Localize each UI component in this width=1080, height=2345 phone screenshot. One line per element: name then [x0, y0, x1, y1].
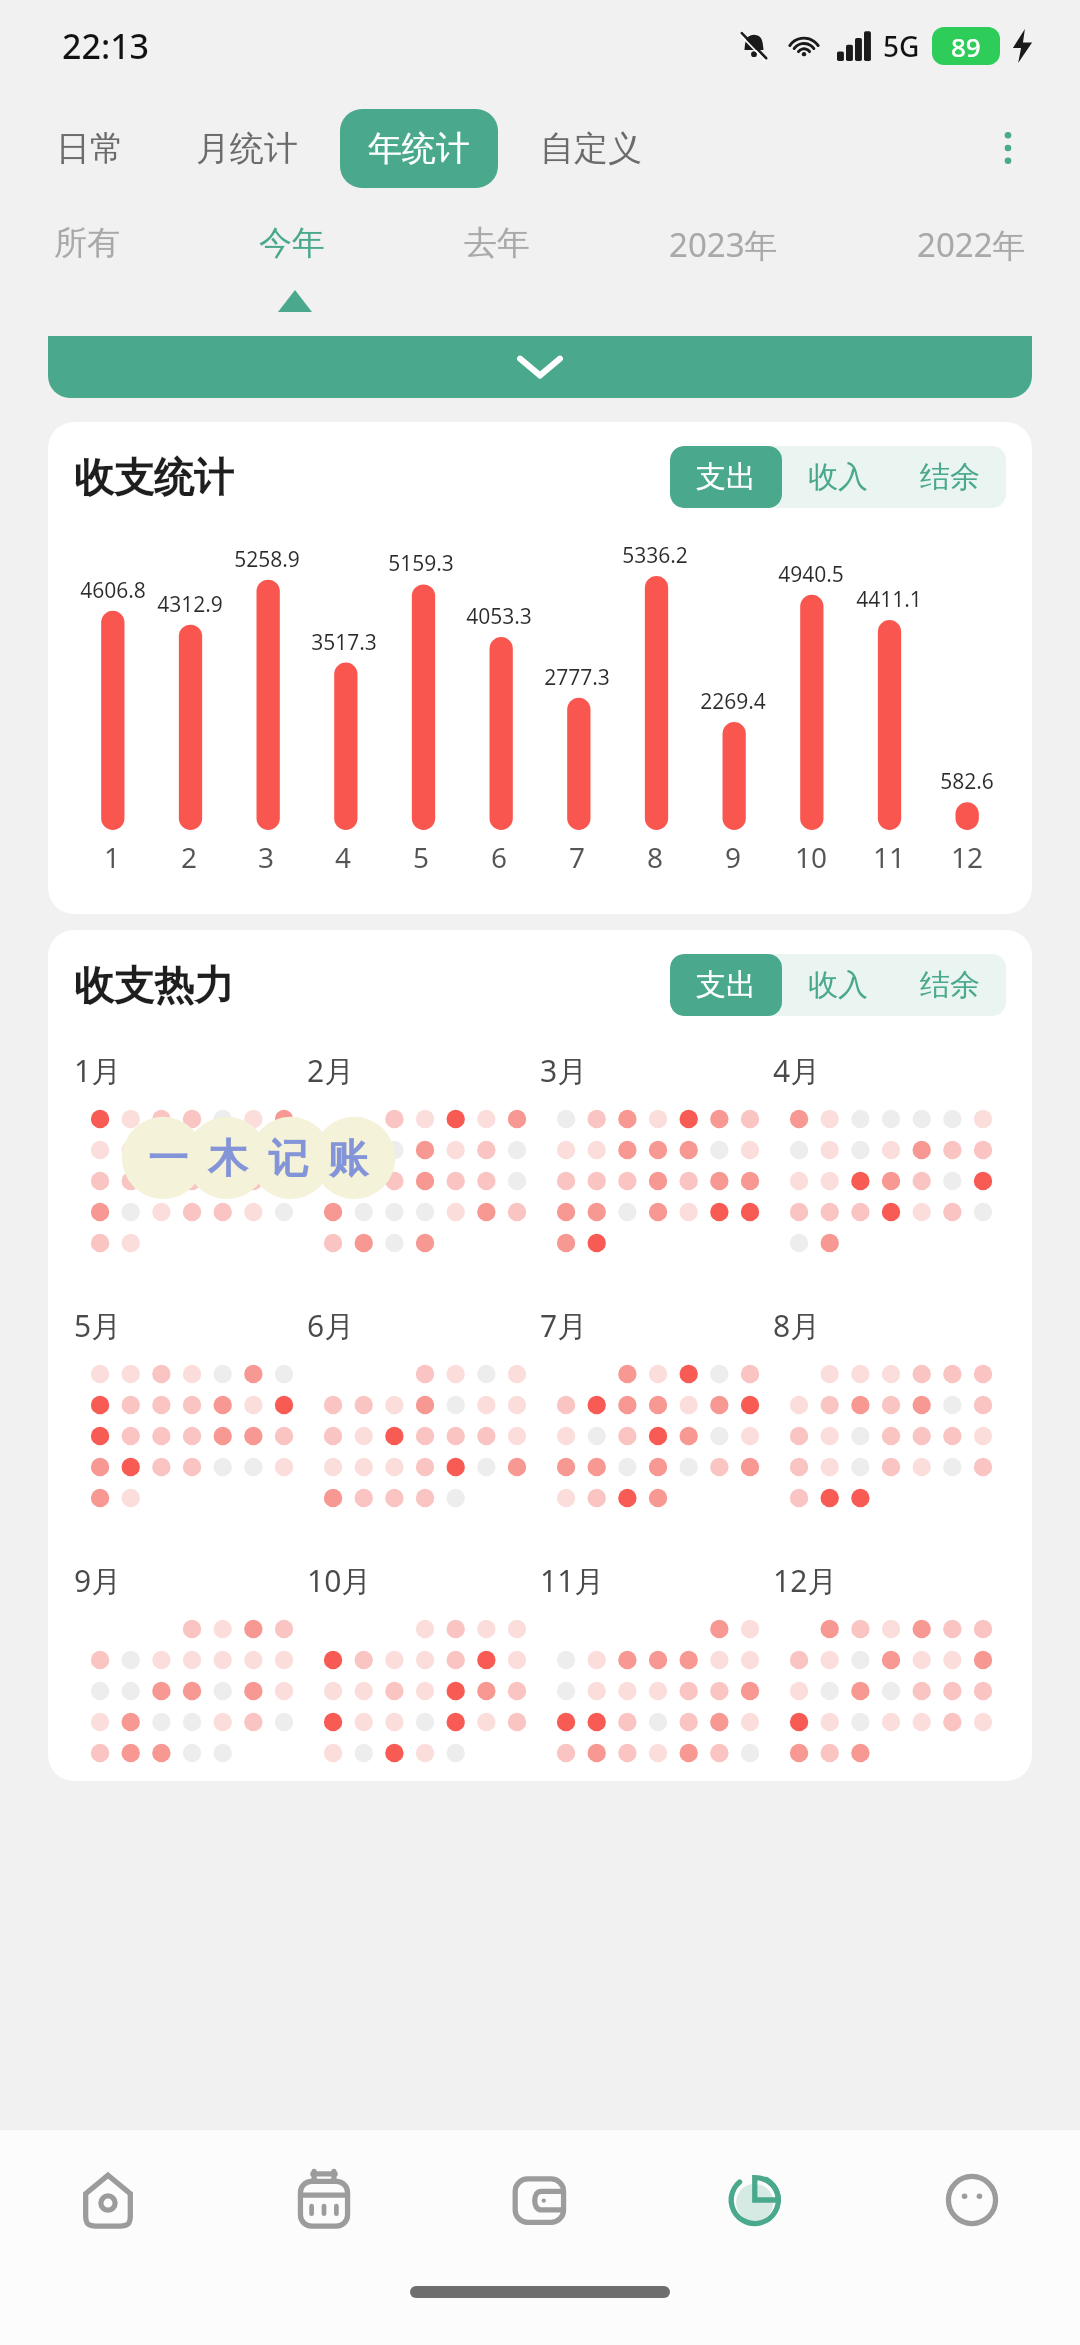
- staticText: 5月: [74, 1305, 122, 1346]
- button[interactable]: Expand summary: [48, 336, 1032, 398]
- staticText: 3月: [540, 1050, 588, 1091]
- button[interactable]: 收入: [782, 954, 894, 1016]
- staticText: 记: [268, 1133, 308, 1183]
- staticText: 5G: [883, 27, 920, 65]
- staticText: 12月: [773, 1560, 838, 1601]
- staticText: 22:13: [62, 23, 150, 69]
- staticText: 11: [873, 838, 906, 876]
- button[interactable]: 结余: [894, 446, 1006, 508]
- staticText: 收支热力: [74, 960, 234, 1010]
- button[interactable]: 年统计: [340, 109, 498, 188]
- staticText: 4411.1: [856, 585, 922, 614]
- staticText: 9: [725, 838, 742, 876]
- staticText: 3517.3: [311, 628, 377, 657]
- button[interactable]: Wallet: [432, 2130, 648, 2270]
- staticText: 4月: [773, 1050, 821, 1091]
- staticText: 4312.9: [157, 590, 223, 619]
- staticText: 结余: [920, 966, 980, 1004]
- staticText: 10: [795, 838, 828, 876]
- staticText: 7: [569, 838, 586, 876]
- button[interactable]: 支出: [670, 954, 782, 1016]
- staticText: 账: [328, 1133, 368, 1183]
- staticText: 4940.5: [778, 560, 844, 589]
- staticText: 支出: [696, 966, 756, 1004]
- staticText: 6: [491, 838, 508, 876]
- staticText: 2777.3: [544, 663, 610, 692]
- button[interactable]: 收入: [782, 446, 894, 508]
- staticText: 8: [647, 838, 664, 876]
- button[interactable]: 支出: [670, 446, 782, 508]
- staticText: 月统计: [196, 127, 298, 170]
- staticText: 1月: [74, 1050, 122, 1091]
- staticText: 582.6: [940, 767, 994, 796]
- staticText: 今年: [259, 222, 325, 264]
- staticText: 11月: [540, 1560, 605, 1601]
- staticText: 自定义: [540, 127, 642, 170]
- staticText: 5258.9: [234, 545, 300, 574]
- button[interactable]: Calendar: [216, 2130, 432, 2270]
- staticText: 4053.3: [466, 602, 532, 631]
- staticText: 收入: [808, 458, 868, 496]
- button[interactable]: 2023年: [655, 212, 792, 277]
- staticText: 5: [413, 838, 430, 876]
- staticText: 4: [335, 838, 352, 876]
- button[interactable]: Profile: [864, 2130, 1080, 2270]
- button[interactable]: 日常: [50, 117, 130, 180]
- button[interactable]: 今年: [245, 212, 339, 274]
- button[interactable]: More options: [980, 120, 1036, 176]
- staticText: 6月: [307, 1305, 355, 1346]
- staticText: 去年: [464, 222, 530, 264]
- staticText: 日常: [56, 127, 124, 170]
- staticText: 2269.4: [700, 687, 766, 716]
- staticText: 4606.8: [80, 576, 146, 605]
- staticText: 12: [951, 838, 984, 876]
- staticText: 2: [181, 838, 198, 876]
- staticText: 1: [104, 838, 121, 876]
- button[interactable]: 2022年: [903, 212, 1040, 277]
- staticText: 89: [951, 29, 981, 64]
- button[interactable]: 结余: [894, 954, 1006, 1016]
- staticText: 支出: [696, 458, 756, 496]
- button[interactable]: 自定义: [534, 117, 648, 180]
- staticText: 2023年: [669, 222, 778, 267]
- staticText: 3: [258, 838, 275, 876]
- staticText: 收入: [808, 966, 868, 1004]
- staticText: 木: [208, 1133, 248, 1183]
- button[interactable]: Statistics: [648, 2130, 864, 2270]
- staticText: 所有: [54, 222, 120, 264]
- staticText: 5159.3: [388, 549, 454, 578]
- staticText: 5336.2: [622, 541, 688, 570]
- staticText: 2月: [307, 1050, 355, 1091]
- staticText: 收支统计: [74, 452, 234, 502]
- staticText: 2022年: [917, 222, 1026, 267]
- staticText: 9月: [74, 1560, 122, 1601]
- staticText: 8月: [773, 1305, 821, 1346]
- staticText: 7月: [540, 1305, 588, 1346]
- staticText: 年统计: [368, 127, 470, 170]
- staticText: 10月: [307, 1560, 372, 1601]
- button[interactable]: Home: [0, 2130, 216, 2270]
- staticText: 一: [148, 1133, 188, 1183]
- button[interactable]: 所有: [40, 212, 134, 274]
- button[interactable]: 月统计: [190, 117, 304, 180]
- staticText: 结余: [920, 458, 980, 496]
- button[interactable]: 去年: [450, 212, 544, 274]
